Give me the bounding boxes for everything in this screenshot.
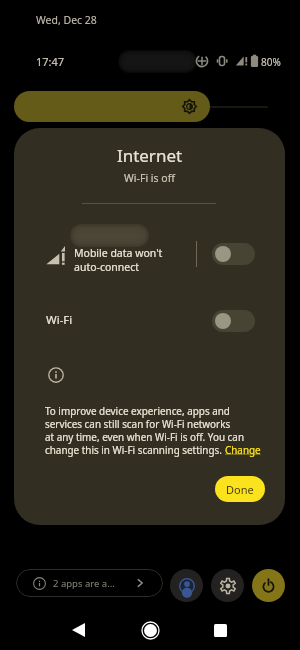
button[interactable]: Toggle [212,310,255,332]
staticText: Mobile data won't [74,246,163,260]
button[interactable]: Toggle [212,243,255,265]
button[interactable]: Change [225,443,261,456]
button[interactable]: Home [128,608,172,650]
staticText: Wed, Dec 28 [36,13,97,27]
button[interactable]: Brightness [14,91,210,122]
staticText: at any time, even when Wi-Fi is off. You… [45,430,244,443]
button[interactable]: Recent apps [198,608,242,650]
staticText: 17:47 [36,54,65,69]
staticText: 80% [261,55,281,69]
button[interactable]: Settings [211,569,244,602]
button[interactable]: Done [215,476,265,502]
staticText: To improve device experience, apps and [45,404,230,417]
staticText: Wi-Fi is off [14,171,285,185]
staticText: services can still scan for Wi-Fi networ… [45,417,231,430]
button[interactable]: 2 apps are a... [16,569,163,597]
staticText: auto-connect [74,260,140,274]
staticText: change this in Wi-Fi scanning settings. [45,443,225,456]
button[interactable]: Power [252,569,285,602]
button[interactable]: User account [170,569,203,602]
staticText: Internet [14,144,285,167]
staticText: Wi-Fi [46,312,73,328]
staticText: Done [226,482,254,497]
staticText: 2 apps are a... [53,577,115,590]
button[interactable]: Back [56,608,100,650]
